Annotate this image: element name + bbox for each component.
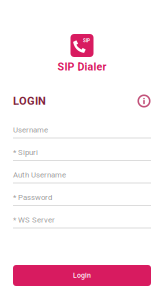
staticText: * WS Server xyxy=(13,215,55,224)
staticText: SIP xyxy=(83,38,90,43)
button[interactable]: Login xyxy=(13,265,151,286)
staticText: SIP Dialer xyxy=(57,60,106,73)
button[interactable]: Info xyxy=(137,94,151,108)
staticText: * Password xyxy=(13,193,52,202)
staticText: Login xyxy=(73,271,91,279)
staticText: Auth Username xyxy=(13,170,66,179)
staticText: LOGIN xyxy=(13,94,46,107)
staticText: Username xyxy=(13,125,48,134)
staticText: * Sipuri xyxy=(13,148,38,157)
